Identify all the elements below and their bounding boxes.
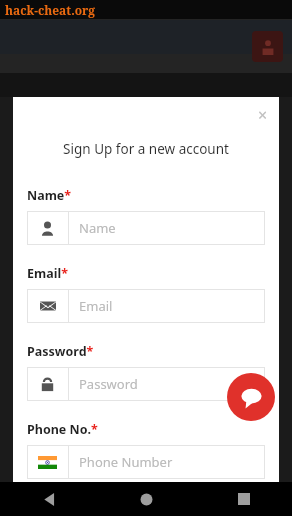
button[interactable]: Close: [252, 104, 274, 126]
staticText: Name: [79, 219, 116, 237]
staticText: Password*: [27, 343, 94, 360]
staticText: Password: [79, 375, 138, 393]
button[interactable]: Recents: [195, 482, 292, 516]
button[interactable]: Chat: [227, 373, 275, 421]
button[interactable]: Home: [98, 482, 195, 516]
staticText: Email: [79, 297, 113, 315]
button[interactable]: Phone Number: [27, 445, 265, 479]
staticText: hack-cheat.org: [5, 2, 96, 18]
staticText: Sign Up for a new account: [19, 140, 273, 158]
button[interactable]: Name: [27, 211, 265, 245]
button[interactable]: Email: [27, 289, 265, 323]
staticText: Phone Number: [79, 453, 173, 471]
button[interactable]: Password: [27, 367, 265, 401]
staticText: Name*: [27, 187, 72, 204]
button[interactable]: Account: [252, 31, 283, 62]
staticText: Email*: [27, 265, 68, 282]
staticText: ×: [258, 104, 268, 126]
button[interactable]: Back: [0, 482, 98, 516]
staticText: Phone No.*: [27, 421, 98, 438]
